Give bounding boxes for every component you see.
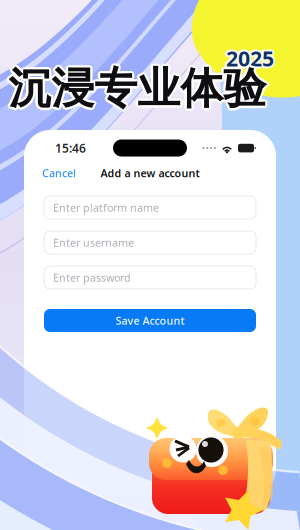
staticText: 沉浸专业体验 <box>7 61 265 113</box>
button[interactable]: Cancel <box>24 162 76 184</box>
staticText: Enter password <box>53 270 131 285</box>
button[interactable]: Save Account <box>44 309 256 332</box>
staticText: Add a new account <box>100 166 199 180</box>
staticText: 2025 <box>226 42 274 70</box>
staticText: 沉浸专业体验 <box>10 61 268 113</box>
staticText: 沉浸专业体验 <box>6 62 264 115</box>
staticText: Enter username <box>53 235 134 250</box>
staticText: 沉浸专业体验 <box>7 64 265 116</box>
staticText: Cancel <box>42 166 76 180</box>
staticText: 沉浸专业体验 <box>11 62 269 115</box>
staticText: 2025 <box>225 43 273 71</box>
staticText: 2025 <box>227 45 275 74</box>
staticText: Save Account <box>115 313 184 328</box>
staticText: 沉浸专业体验 <box>8 62 266 115</box>
staticText: 2025 <box>225 45 273 74</box>
staticText: 15:46 <box>55 140 86 156</box>
button[interactable]: Enter platform name <box>44 196 256 219</box>
staticText: 沉浸专业体验 <box>8 65 266 117</box>
staticText: 沉浸专业体验 <box>8 60 266 112</box>
staticText: 2025 <box>226 44 274 72</box>
staticText: 2025 <box>227 43 275 71</box>
staticText: 沉浸专业体验 <box>10 64 268 116</box>
staticText: 2025 <box>228 44 276 72</box>
button[interactable]: Enter password <box>44 266 256 289</box>
staticText: 2025 <box>224 44 272 72</box>
button[interactable]: Enter username <box>44 231 256 254</box>
staticText: Enter platform name <box>53 200 159 215</box>
staticText: 2025 <box>226 46 274 74</box>
